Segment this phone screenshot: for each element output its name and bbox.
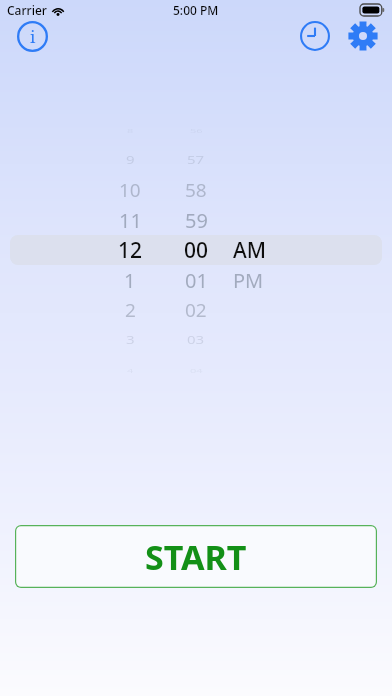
staticText: 02 <box>185 298 207 322</box>
button[interactable]: 01 <box>164 265 228 295</box>
button[interactable]: 2 <box>98 295 162 325</box>
button[interactable]: 02 <box>164 295 228 325</box>
button[interactable]: PM <box>233 265 297 295</box>
staticText: 10 <box>119 178 141 202</box>
staticText: 5:00 PM <box>173 2 219 18</box>
staticText: 58 <box>185 178 207 202</box>
staticText: 4 <box>127 367 134 374</box>
button[interactable]: AM <box>233 235 297 265</box>
staticText: 03 <box>187 333 205 347</box>
staticText: START <box>145 534 247 580</box>
button[interactable]: 10 <box>98 175 162 205</box>
button[interactable]: 12 <box>98 235 162 265</box>
staticText: PM <box>233 267 264 294</box>
button[interactable]: 58 <box>164 175 228 205</box>
button[interactable]: 1 <box>98 265 162 295</box>
staticText: 59 <box>185 207 208 234</box>
button[interactable]: 03 <box>164 325 228 355</box>
staticText: 57 <box>187 153 205 167</box>
staticText: 12 <box>118 236 143 265</box>
button[interactable]: History <box>291 12 339 60</box>
staticText: 3 <box>126 333 135 347</box>
staticText: 04 <box>190 367 203 374</box>
staticText: 2 <box>125 298 136 322</box>
staticText: AM <box>233 236 267 265</box>
button[interactable]: 11 <box>98 205 162 235</box>
staticText: i <box>30 25 36 48</box>
staticText: Carrier <box>7 2 47 18</box>
staticText: 9 <box>126 153 135 167</box>
button[interactable]: 59 <box>164 205 228 235</box>
button[interactable]: 00 <box>164 235 228 265</box>
staticText: 1 <box>124 267 136 294</box>
staticText: 00 <box>184 236 209 265</box>
button[interactable]: Info <box>8 12 56 60</box>
staticText: 01 <box>185 267 208 294</box>
button[interactable]: Settings <box>339 12 387 60</box>
staticText: 11 <box>119 207 142 234</box>
button[interactable]: START <box>15 525 377 588</box>
